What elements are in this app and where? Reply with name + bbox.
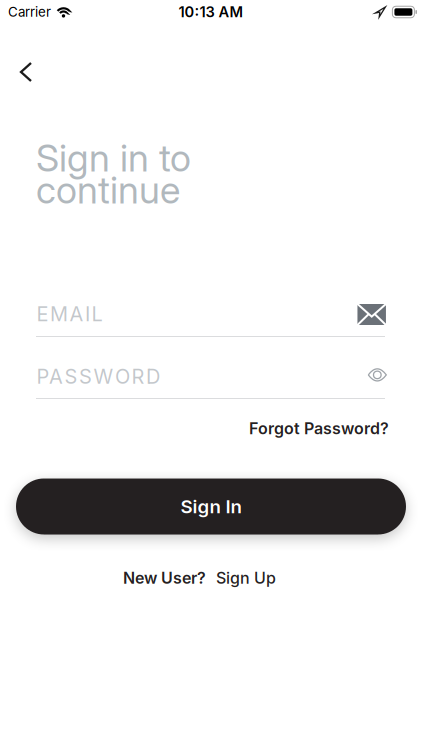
button[interactable]: Forgot Password? [249, 419, 389, 438]
staticText: 10:13 AM [178, 3, 243, 21]
button[interactable]: Sign In [16, 478, 406, 534]
staticText: Sign In [180, 495, 241, 517]
staticText: Carrier [8, 4, 51, 20]
button[interactable]: Show password [362, 363, 392, 387]
staticText: New User? [123, 569, 206, 587]
staticText: Sign Up [216, 569, 276, 587]
staticText: Forgot Password? [249, 419, 389, 438]
staticText: continue [36, 168, 180, 212]
staticText: Sign in to [36, 136, 191, 180]
button[interactable]: Sign Up [216, 569, 276, 587]
button[interactable]: Back [13, 55, 39, 89]
staticText: EMAIL [36, 302, 102, 326]
staticText: PASSWORD [36, 365, 160, 388]
